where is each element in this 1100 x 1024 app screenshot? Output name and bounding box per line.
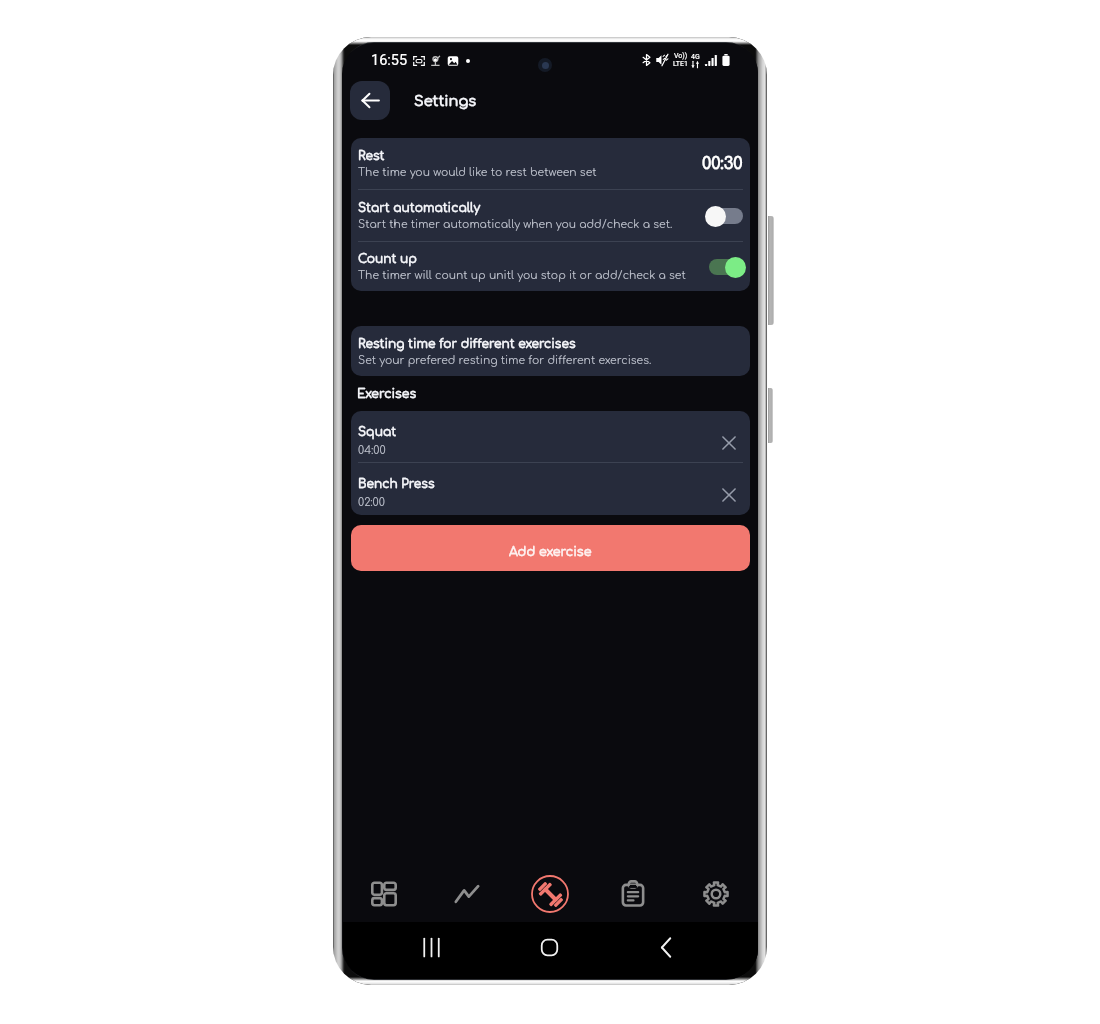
button[interactable]: Settings [674,865,757,923]
staticText: The time you would like to rest between … [358,166,597,178]
staticText: The timer will count up unitl you stop i… [358,269,686,281]
staticText: Squat [358,425,397,439]
button[interactable]: Bench Press [351,463,750,514]
button[interactable]: Log [591,865,674,923]
button[interactable]: Start automatically [351,190,750,241]
staticText: 4G [691,53,700,61]
staticText: Add exercise [509,545,592,559]
button[interactable]: Add exercise [351,525,750,571]
staticText: Exercises [357,387,417,401]
staticText: Resting time for different exercises [358,337,576,351]
staticText: Settings [414,93,477,109]
staticText: Rest [358,149,385,163]
button[interactable]: Statistics [425,865,508,923]
button[interactable]: Back [350,81,390,120]
button[interactable]: Back [647,919,685,976]
staticText: LTE1 [673,60,688,68]
staticText: Vo)) [674,52,688,60]
staticText: Bench Press [358,477,435,491]
staticText: 04:00 [358,444,386,456]
staticText: 16:55 [371,52,408,69]
button[interactable]: Dashboard [343,865,425,923]
button[interactable]: Rest [351,138,750,189]
button[interactable]: Resting time for different exercises [351,326,750,376]
button[interactable]: Home [530,919,568,976]
button[interactable]: Squat [351,411,750,462]
staticText: Start the timer automatically when you a… [358,218,673,230]
button[interactable]: Remove Bench Press [715,482,741,508]
button[interactable] [705,256,746,278]
button[interactable]: Remove Squat [715,430,741,456]
button[interactable] [705,205,746,227]
button[interactable]: Recents [412,919,450,976]
button[interactable]: Count up [351,242,750,291]
staticText: Count up [358,252,417,266]
button[interactable]: Workout [508,865,591,923]
staticText: 02:00 [358,496,385,508]
staticText: 00:30 [702,155,743,173]
staticText: Set your prefered resting time for diffe… [358,354,652,366]
staticText: Start automatically [358,201,481,215]
